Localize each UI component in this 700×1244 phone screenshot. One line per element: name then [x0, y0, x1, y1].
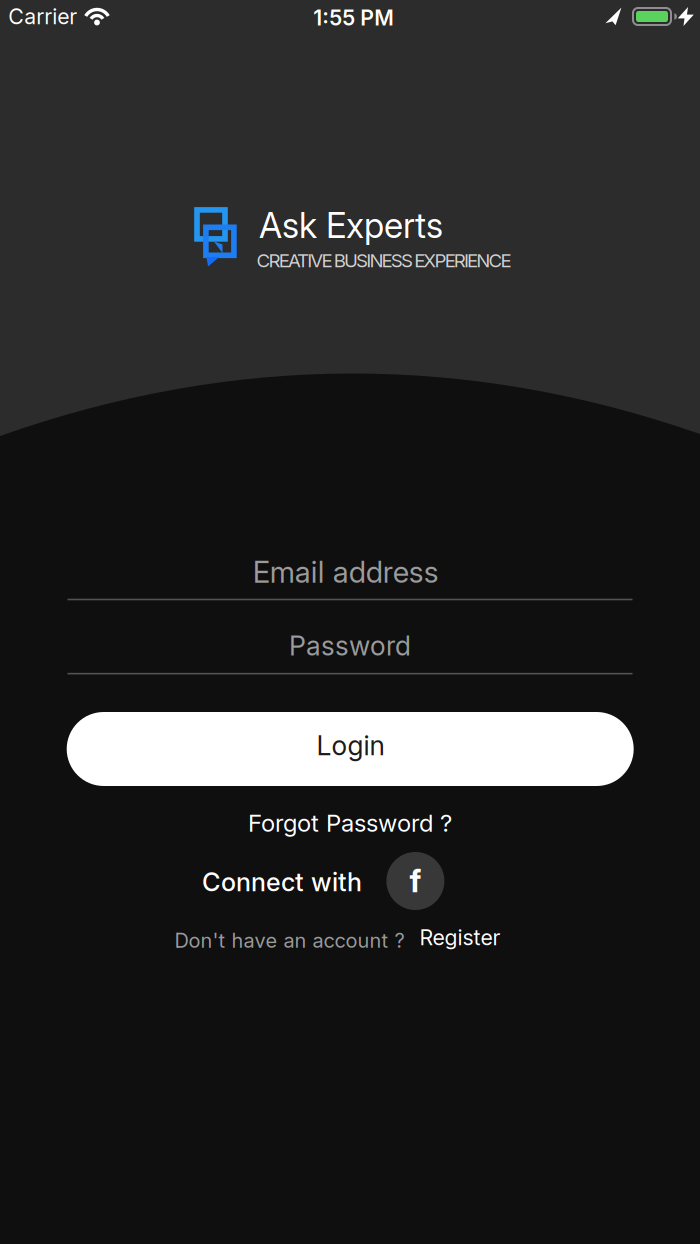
- button[interactable]: Register: [419, 925, 500, 950]
- staticText: CREATIVE BUSINESS EXPERIENCE: [256, 249, 512, 271]
- button[interactable]: Connect with Facebook: [386, 852, 444, 910]
- staticText: Login: [316, 730, 384, 761]
- staticText: f: [409, 863, 421, 899]
- staticText: Don't have an account ?: [174, 929, 404, 952]
- staticText: 1:55 PM: [313, 5, 394, 30]
- button[interactable]: Password: [67, 617, 632, 674]
- button[interactable]: Forgot Password ?: [248, 809, 452, 837]
- staticText: Ask Experts: [259, 205, 443, 246]
- button[interactable]: Login: [67, 712, 634, 786]
- button[interactable]: Email address: [67, 543, 632, 599]
- staticText: Carrier: [8, 4, 77, 29]
- staticText: Password: [289, 630, 411, 661]
- staticText: Forgot Password ?: [248, 809, 452, 837]
- staticText: Register: [419, 925, 500, 950]
- staticText: Email address: [253, 555, 439, 589]
- staticText: Connect with: [202, 867, 362, 897]
